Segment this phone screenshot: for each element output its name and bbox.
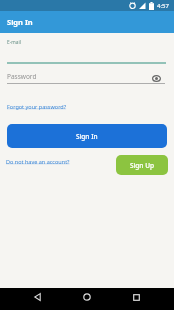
staticText: Sign In [76, 132, 98, 141]
staticText: Sign In [7, 17, 33, 27]
button[interactable]: Sign Up [116, 155, 168, 175]
button[interactable]: Sign In [7, 124, 167, 148]
button[interactable] [124, 288, 148, 310]
button[interactable] [152, 75, 161, 82]
button[interactable] [75, 288, 99, 310]
button[interactable]: Do not have an account? [6, 158, 70, 165]
button[interactable]: Forgot your password? [7, 103, 67, 110]
staticText: Sign Up [130, 161, 154, 170]
staticText: E-mail [7, 39, 21, 46]
staticText: Password [7, 72, 37, 81]
staticText: 4:57 [157, 2, 169, 10]
button[interactable] [25, 288, 49, 310]
